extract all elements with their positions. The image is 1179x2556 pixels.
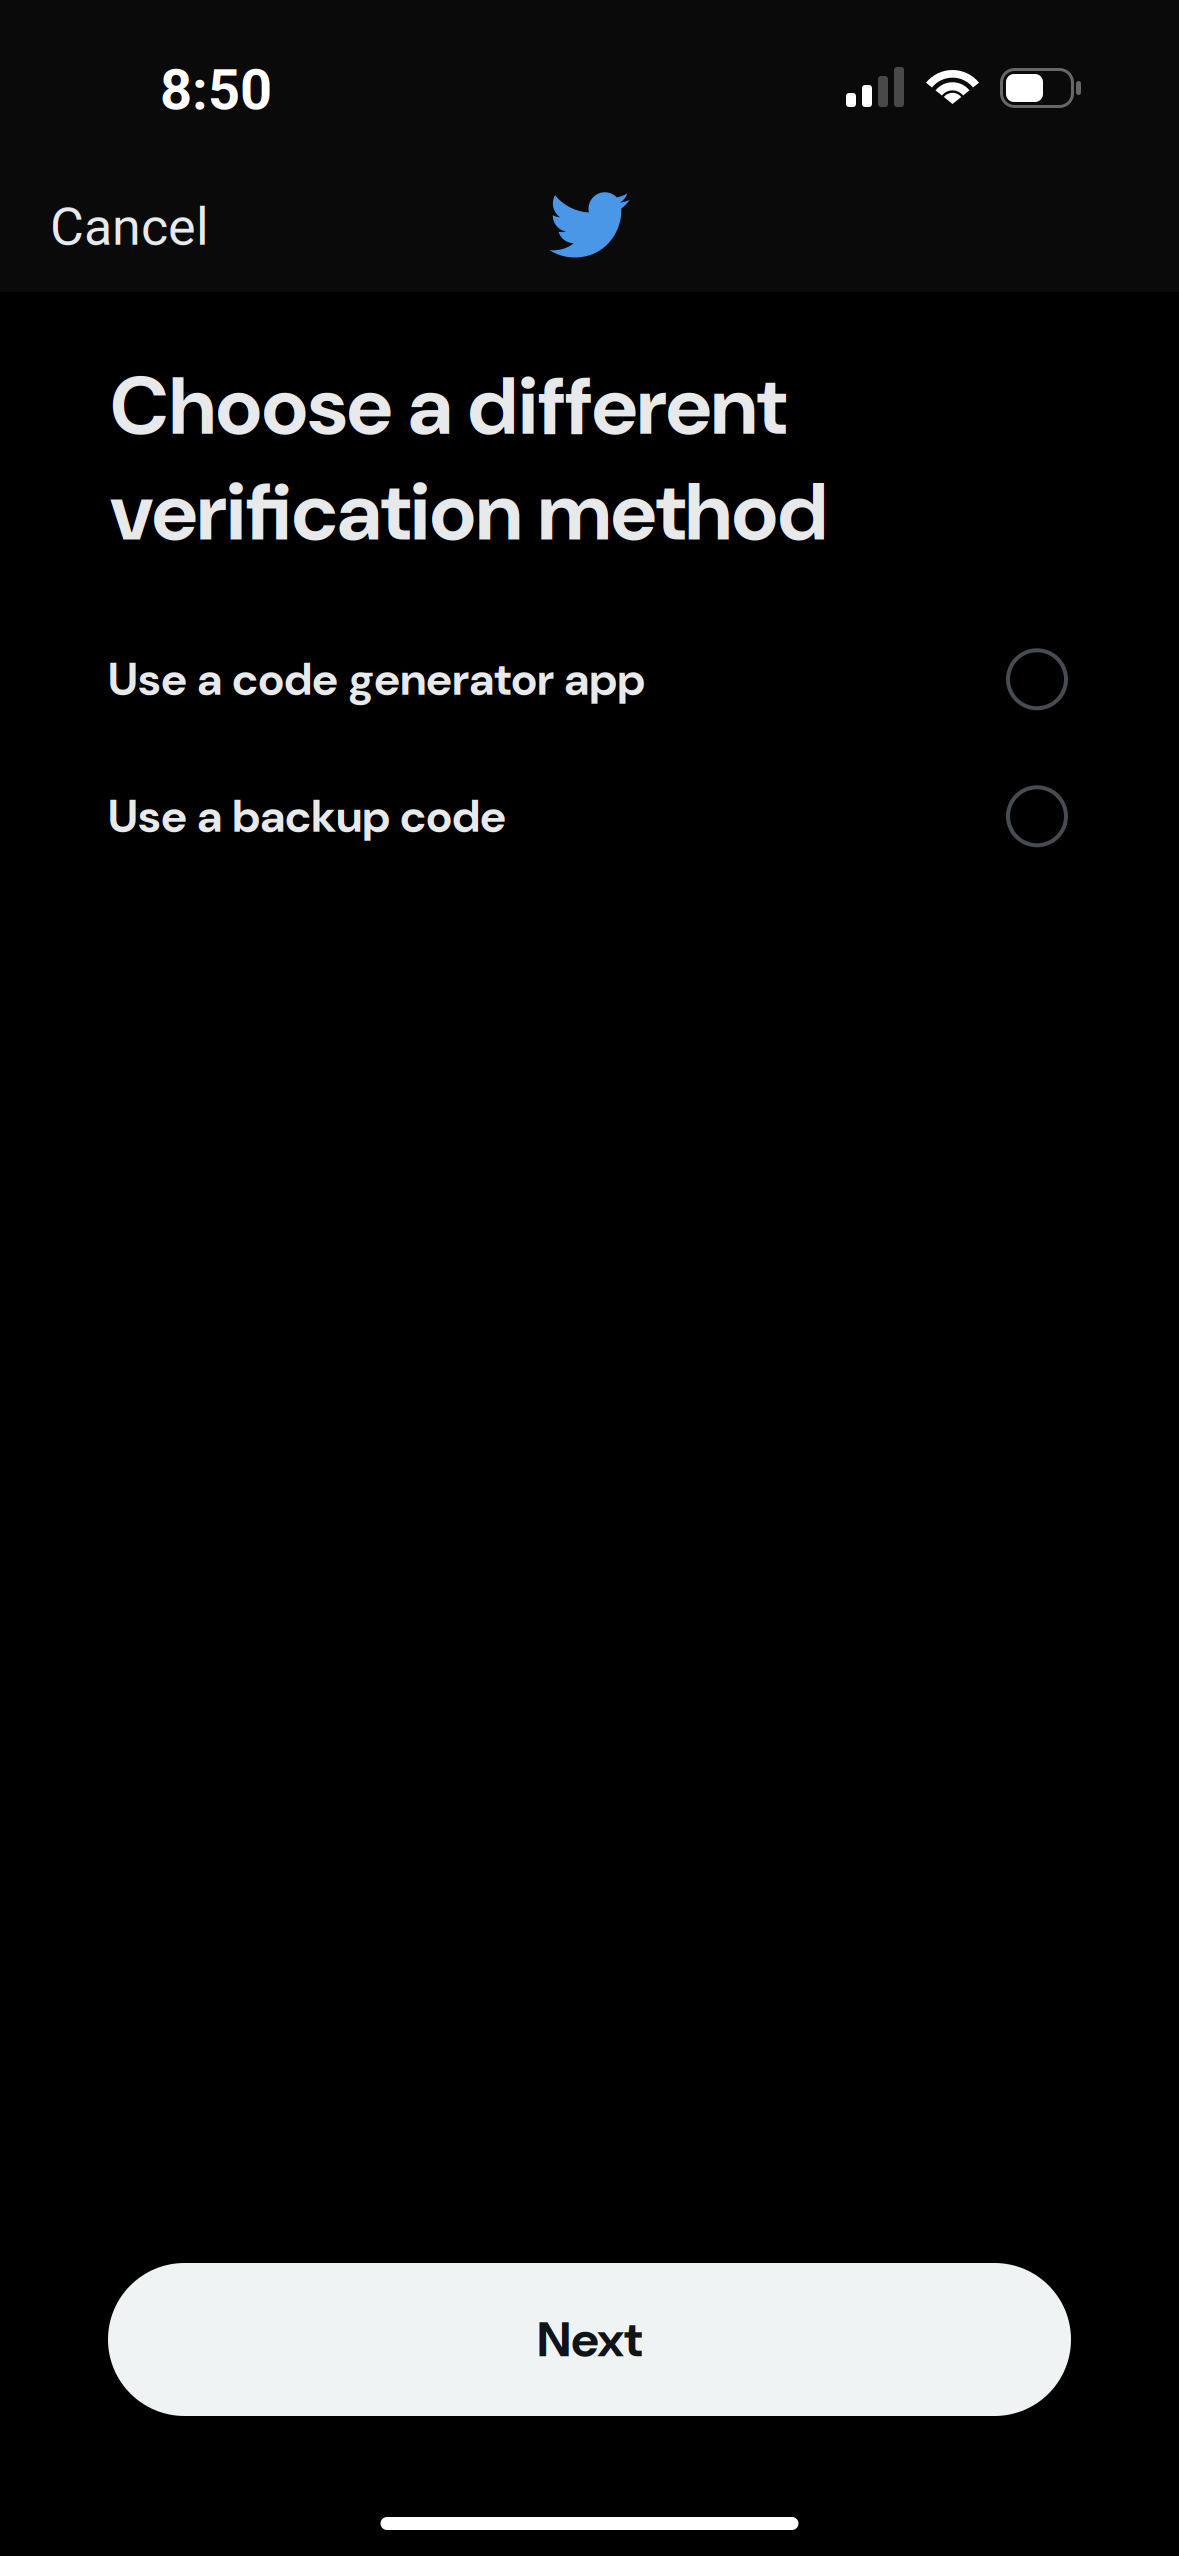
staticText: 8:50 (160, 57, 272, 123)
staticText: Choose a different verification method (110, 353, 828, 565)
staticText: Next (537, 2307, 642, 2372)
button[interactable]: Use a backup code (0, 748, 1179, 885)
button[interactable]: Use a code generator app (0, 611, 1179, 748)
staticText: Cancel (50, 196, 209, 257)
staticText: Use a code generator app (108, 650, 645, 709)
button[interactable]: Cancel (0, 180, 237, 281)
staticText: Use a backup code (108, 787, 506, 846)
button[interactable]: Next (108, 2263, 1071, 2416)
